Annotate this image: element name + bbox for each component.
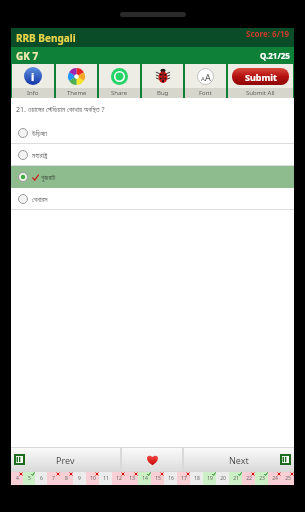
button[interactable]: 17 — [177, 472, 190, 485]
staticText: 5 — [28, 475, 31, 482]
staticText: A — [201, 75, 205, 83]
button[interactable]: বেনারস — [11, 188, 294, 210]
staticText: GK 7 — [16, 49, 39, 63]
staticText: 10 — [90, 475, 96, 482]
staticText: গুজরাট — [41, 174, 56, 181]
button[interactable]: Favourite — [122, 448, 182, 471]
staticText: A — [205, 71, 211, 83]
staticText: মহারাষ্ট্র — [32, 152, 48, 159]
button[interactable]: 21 — [229, 472, 242, 485]
staticText: 18 — [194, 475, 200, 482]
button[interactable]: 16 — [164, 472, 177, 485]
staticText: বেনারস — [32, 196, 48, 203]
staticText: 14 — [142, 475, 148, 482]
button[interactable]: 19 — [203, 472, 216, 485]
staticText: Next — [229, 454, 249, 466]
staticText: i — [31, 69, 35, 84]
button[interactable]: গুজরাট — [11, 166, 294, 188]
staticText: Submit All — [246, 89, 275, 97]
button[interactable]: মহারাষ্ট্র — [11, 144, 294, 166]
button[interactable]: Theme — [56, 64, 97, 88]
button[interactable]: Info — [12, 64, 54, 88]
button[interactable]: 8 — [60, 472, 73, 485]
staticText: Font — [199, 89, 212, 97]
button[interactable]: Share — [99, 88, 140, 98]
staticText: 23 — [259, 475, 265, 482]
staticText: 16 — [168, 475, 174, 482]
button[interactable]: Submit — [232, 68, 289, 85]
button[interactable]: 6 — [35, 472, 47, 485]
staticText: 8 — [65, 475, 68, 482]
button[interactable]: উড়িষ্যা — [11, 122, 294, 144]
staticText: Q.21/25 — [260, 50, 290, 61]
button[interactable]: 10 — [86, 472, 99, 485]
button[interactable]: 12 — [112, 472, 125, 485]
staticText: 12 — [116, 475, 122, 482]
staticText: 19 — [207, 475, 213, 482]
staticText: Submit — [245, 71, 277, 83]
button[interactable]: Prev — [11, 448, 120, 471]
button[interactable]: Font — [185, 64, 226, 88]
staticText: Bug — [157, 89, 169, 97]
button[interactable]: Bug — [142, 88, 183, 98]
button[interactable]: Next — [184, 448, 294, 471]
button[interactable]: Bug — [142, 64, 183, 88]
staticText: উড়িষ্যা — [32, 130, 47, 137]
button[interactable]: 11 — [99, 472, 112, 485]
staticText: Share — [111, 89, 128, 97]
staticText: 25 — [285, 475, 291, 482]
staticText: Score: 6/19 — [246, 28, 290, 39]
button[interactable]: 24 — [268, 472, 281, 485]
staticText: 22 — [246, 475, 252, 482]
staticText: Info — [27, 89, 39, 97]
button[interactable]: Submit — [228, 64, 293, 88]
button[interactable]: 23 — [255, 472, 268, 485]
staticText: 20 — [220, 475, 226, 482]
button[interactable]: Submit All — [228, 88, 293, 98]
staticText: 21 — [233, 475, 239, 482]
staticText: 24 — [272, 475, 278, 482]
staticText: 9 — [78, 475, 81, 482]
staticText: Prev — [56, 454, 75, 466]
button[interactable]: 18 — [190, 472, 203, 485]
button[interactable]: 15 — [151, 472, 164, 485]
staticText: 11 — [103, 475, 109, 482]
button[interactable]: Share — [99, 64, 140, 88]
staticText: 6 — [40, 475, 43, 482]
staticText: 21. ওয়াঙ্গের স্টেডিয়াম কোথায় অবস্থিত … — [16, 105, 105, 115]
button[interactable]: Font — [185, 88, 226, 98]
button[interactable]: 20 — [216, 472, 229, 485]
staticText: 7 — [52, 475, 55, 482]
staticText: 15 — [155, 475, 161, 482]
button[interactable]: 22 — [242, 472, 255, 485]
button[interactable]: 14 — [138, 472, 151, 485]
button[interactable]: 13 — [125, 472, 138, 485]
button[interactable]: 4 — [11, 472, 23, 485]
staticText: 4 — [16, 475, 19, 482]
staticText: Theme — [67, 89, 87, 97]
staticText: RRB Bengali — [16, 31, 76, 45]
staticText: 17 — [181, 475, 187, 482]
button[interactable]: 25 — [281, 472, 294, 485]
button[interactable]: Info — [12, 88, 54, 98]
staticText: 13 — [129, 475, 135, 482]
button[interactable]: 7 — [47, 472, 60, 485]
button[interactable]: 5 — [23, 472, 35, 485]
button[interactable]: Theme — [56, 88, 97, 98]
button[interactable]: 9 — [73, 472, 86, 485]
